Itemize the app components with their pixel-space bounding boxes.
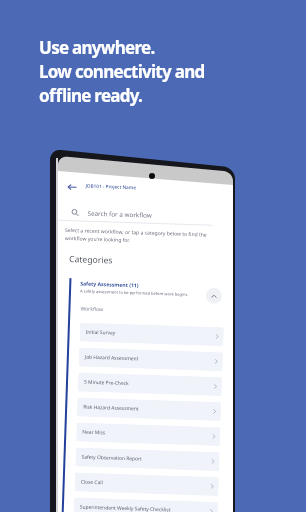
button[interactable]: Risk Hazard Assessment bbox=[77, 397, 221, 421]
button[interactable] bbox=[67, 203, 218, 222]
button[interactable]: Superintendent Weekly Safety Checklist bbox=[74, 497, 218, 512]
button[interactable]: Near Miss bbox=[76, 422, 221, 446]
staticText: Workflow bbox=[80, 305, 103, 313]
staticText: Select a recent workflow, or tap a categ… bbox=[65, 227, 207, 246]
staticText: 5 Minute Pre-Check bbox=[84, 379, 129, 387]
button[interactable]: Initial Survey bbox=[79, 322, 224, 346]
staticText: Job Hazard Assessment bbox=[85, 354, 139, 362]
button[interactable]: 5 Minute Pre-Check bbox=[78, 372, 222, 396]
staticText: Near Miss bbox=[82, 429, 105, 436]
button[interactable]: Safety Observation Report bbox=[75, 447, 220, 471]
staticText: Initial Survey bbox=[86, 329, 116, 337]
staticText: Close Call bbox=[81, 479, 104, 486]
button[interactable] bbox=[63, 178, 189, 197]
button[interactable]: Close Call bbox=[74, 472, 219, 496]
staticText: Superintendent Weekly Safety Checklist bbox=[80, 503, 171, 512]
staticText: Search for a workflow bbox=[87, 209, 153, 220]
button[interactable]: Job Hazard Assessment bbox=[78, 347, 223, 371]
staticText: JOB101 - Project Name bbox=[85, 183, 137, 190]
button[interactable] bbox=[206, 288, 222, 304]
button[interactable] bbox=[77, 277, 227, 302]
staticText: Safety Observation Report bbox=[81, 454, 143, 463]
staticText: Categories bbox=[69, 253, 113, 266]
staticText: Use anywhere. Low connectivity and offli… bbox=[39, 36, 205, 107]
staticText: A safety assessment to be performed befo… bbox=[80, 288, 188, 297]
staticText: Safety Assessment (11) bbox=[80, 280, 139, 289]
staticText: Risk Hazard Assessment bbox=[83, 404, 139, 412]
